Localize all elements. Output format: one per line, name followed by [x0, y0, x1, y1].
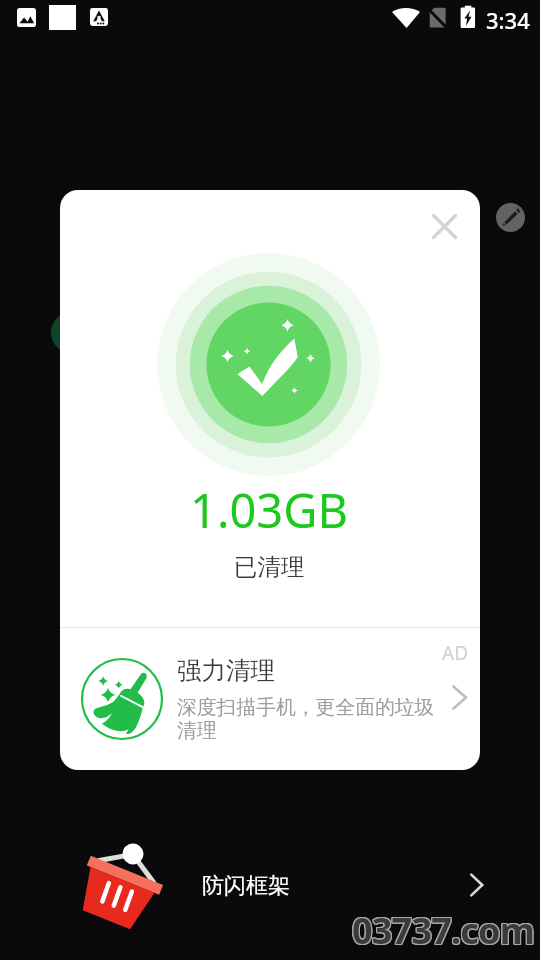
staticText: 深度扫描手机，更全面的垃圾清理	[177, 695, 439, 743]
staticText: 03737.com	[351, 907, 534, 956]
staticText: 防闪框架	[202, 872, 290, 900]
staticText: 03737.com	[352, 907, 535, 956]
staticText: 03737.com	[353, 906, 536, 955]
button[interactable]: 强力清理	[60, 628, 480, 770]
staticText: AD	[442, 640, 469, 666]
staticText: 已清理	[234, 552, 305, 582]
staticText: 03737.com	[352, 906, 535, 955]
staticText: 3:34	[486, 5, 530, 35]
staticText: 03737.com	[353, 905, 536, 954]
button[interactable]: Edit	[496, 203, 525, 232]
staticText: 强力清理	[177, 655, 275, 686]
staticText: 03737.com	[353, 907, 536, 956]
staticText: 03737.com	[351, 905, 534, 954]
staticText: 03737.com	[351, 906, 534, 955]
button[interactable]: 防闪框架	[0, 830, 540, 940]
staticText: 03737.com	[352, 905, 535, 954]
staticText: 1.03GB	[190, 478, 349, 542]
button[interactable]: Close	[409, 191, 479, 261]
